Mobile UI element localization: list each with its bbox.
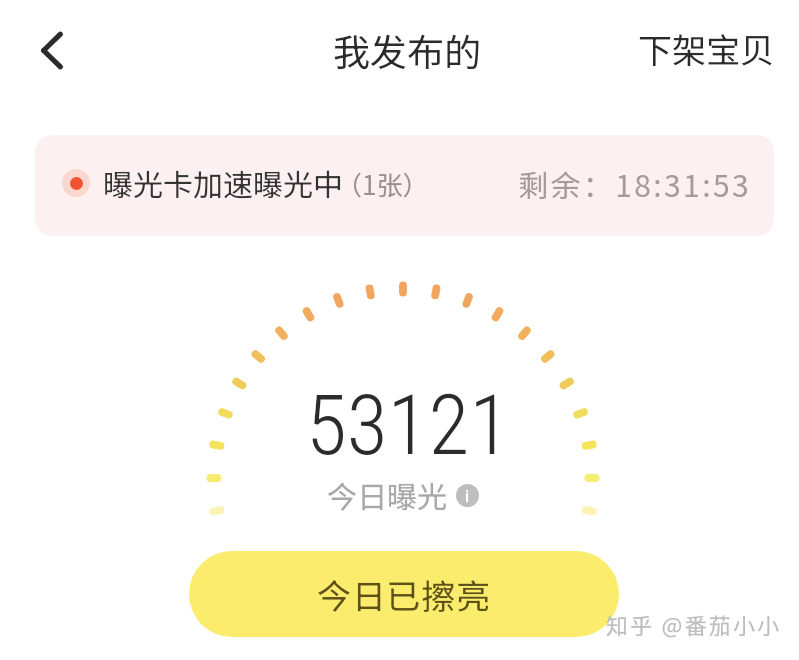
staticText: 53121 [306,376,511,474]
staticText: 下架宝贝 [638,24,774,73]
button[interactable]: 曝光卡加速曝光中 [35,135,774,236]
button[interactable]: 下架宝贝 [638,24,774,73]
staticText: 曝光卡加速曝光中 [103,161,343,204]
button[interactable]: Info [456,484,479,507]
staticText: 今日已擦亮 [317,570,491,619]
button[interactable]: 今日已擦亮 [189,551,619,637]
button[interactable]: Back [16,15,86,85]
staticText: 剩余：18:31:53 [518,162,751,205]
staticText: 我发布的 [333,23,481,77]
staticText: i [465,486,470,506]
staticText: 今日曝光 [327,473,447,516]
staticText: 知乎 @番茄小小 [606,608,782,640]
staticText: （1张） [336,165,429,203]
